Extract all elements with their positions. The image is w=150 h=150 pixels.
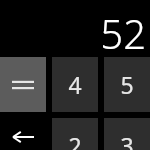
staticText: 5 <box>120 69 134 100</box>
staticText: 2 <box>68 130 82 150</box>
button[interactable]: Backspace <box>0 118 46 150</box>
button[interactable]: 2 <box>52 118 98 150</box>
button[interactable]: 3 <box>104 118 150 150</box>
button[interactable]: Equals <box>0 57 46 112</box>
button[interactable]: 5 <box>104 57 150 112</box>
button[interactable]: 4 <box>52 57 98 112</box>
staticText: 4 <box>68 69 82 100</box>
staticText: 3 <box>120 130 134 150</box>
staticText: 52 <box>100 6 146 50</box>
